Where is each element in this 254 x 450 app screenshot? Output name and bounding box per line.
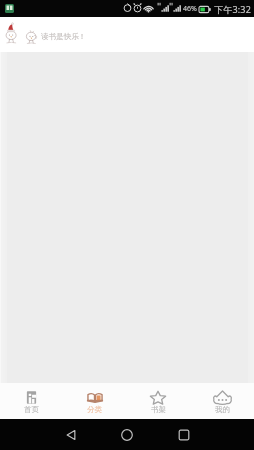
staticText: 读书是快乐 ! [41, 31, 84, 41]
staticText: 分类 [87, 405, 102, 414]
staticText: 首页 [24, 405, 39, 414]
button[interactable]: 书架 [126, 389, 190, 414]
staticText: 下午3:32 [214, 3, 252, 15]
button[interactable]: Home [119, 427, 135, 443]
button[interactable]: Back [63, 427, 79, 443]
staticText: 46% [183, 4, 197, 14]
button[interactable]: 我的 [190, 389, 254, 414]
button[interactable]: 分类 [63, 389, 126, 414]
button[interactable]: Recents [176, 427, 192, 443]
button[interactable]: 首页 [0, 389, 63, 414]
staticText: 书架 [151, 405, 166, 414]
staticText: 我的 [215, 405, 230, 414]
